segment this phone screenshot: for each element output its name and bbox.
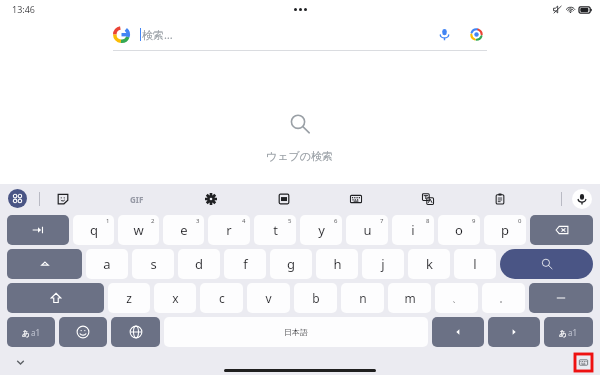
staticText: t: [273, 221, 278, 239]
button[interactable]: 。: [482, 283, 525, 313]
button[interactable]: e: [163, 215, 204, 245]
button[interactable]: Backspace: [530, 215, 593, 245]
button[interactable]: n: [341, 283, 384, 313]
staticText: 6: [334, 217, 338, 225]
button[interactable]: Clipboard: [489, 188, 511, 210]
button[interactable]: d: [178, 249, 220, 279]
button[interactable]: Translate: [417, 188, 439, 210]
staticText: r: [226, 221, 232, 239]
button[interactable]: w: [118, 215, 159, 245]
staticText: q: [90, 221, 98, 239]
button[interactable]: 、: [435, 283, 478, 313]
button[interactable]: j: [362, 249, 404, 279]
staticText: 9: [472, 217, 476, 225]
button[interactable]: r: [208, 215, 250, 245]
staticText: x: [172, 290, 179, 306]
button[interactable]: Shift: [7, 283, 104, 313]
staticText: 、: [452, 293, 461, 304]
button[interactable]: x: [154, 283, 196, 313]
staticText: l: [473, 255, 477, 273]
staticText: v: [265, 290, 272, 306]
staticText: u: [363, 221, 372, 239]
staticText: 1: [106, 217, 110, 225]
button[interactable]: p: [484, 215, 526, 245]
button[interactable]: v: [247, 283, 290, 313]
staticText: o: [455, 221, 463, 239]
staticText: 5: [288, 217, 292, 225]
button[interactable]: Keyboard modes: [345, 188, 367, 210]
staticText: GIF: [130, 194, 144, 205]
staticText: s: [150, 255, 157, 273]
staticText: y: [318, 221, 325, 239]
staticText: h: [333, 255, 342, 273]
staticText: a1: [568, 327, 578, 338]
button[interactable]: Emoji: [59, 317, 107, 347]
button[interactable]: Settings: [200, 188, 222, 210]
button[interactable]: Change language: [111, 317, 160, 347]
staticText: g: [287, 255, 295, 273]
button[interactable]: z: [108, 283, 150, 313]
staticText: 検索…: [142, 27, 173, 42]
button[interactable]: t: [254, 215, 296, 245]
staticText: k: [426, 255, 433, 273]
staticText: z: [126, 290, 132, 306]
staticText: 7: [380, 217, 384, 225]
staticText: d: [195, 255, 203, 273]
button[interactable]: [7, 215, 69, 245]
button[interactable]: Expand toolbar: [8, 189, 27, 208]
button[interactable]: k: [408, 249, 450, 279]
staticText: j: [381, 255, 385, 273]
button[interactable]: Google Lens: [465, 23, 487, 45]
staticText: あ: [22, 328, 31, 338]
staticText: p: [501, 221, 509, 239]
button[interactable]: Voice input: [572, 189, 592, 209]
button[interactable]: y: [300, 215, 342, 245]
button[interactable]: Dash: [529, 283, 593, 313]
staticText: a: [103, 255, 111, 273]
staticText: 2: [151, 217, 155, 225]
button[interactable]: b: [294, 283, 337, 313]
button[interactable]: Left: [432, 317, 484, 347]
staticText: 。: [499, 293, 508, 304]
staticText: 4: [242, 217, 246, 225]
button[interactable]: f: [224, 249, 266, 279]
button[interactable]: o: [438, 215, 480, 245]
button[interactable]: s: [132, 249, 174, 279]
staticText: 日本語: [284, 327, 308, 337]
button[interactable]: u: [346, 215, 388, 245]
button[interactable]: a: [86, 249, 128, 279]
staticText: あ: [559, 328, 568, 338]
button[interactable]: Hide keyboard: [12, 354, 28, 370]
staticText: m: [404, 290, 416, 306]
button[interactable]: q: [73, 215, 114, 245]
staticText: c: [219, 290, 225, 306]
staticText: i: [411, 221, 415, 239]
button[interactable]: m: [388, 283, 431, 313]
staticText: b: [312, 290, 320, 306]
button[interactable]: Caps lock: [7, 249, 82, 279]
staticText: f: [243, 255, 248, 273]
button[interactable]: Switch keyboard: [575, 354, 592, 371]
button[interactable]: GIF: [125, 188, 149, 210]
staticText: n: [359, 290, 367, 306]
staticText: 8: [426, 217, 430, 225]
button[interactable]: Right: [488, 317, 540, 347]
button[interactable]: あ: [544, 317, 593, 347]
staticText: a1: [31, 327, 41, 338]
button[interactable]: Voice search: [433, 23, 455, 45]
staticText: ウェブの検索: [266, 149, 334, 163]
button[interactable]: g: [270, 249, 312, 279]
button[interactable]: 日本語: [164, 317, 428, 347]
staticText: w: [133, 221, 144, 239]
button[interactable]: i: [392, 215, 434, 245]
button[interactable]: c: [200, 283, 243, 313]
button[interactable]: あ: [7, 317, 55, 347]
button[interactable]: Stickers: [52, 188, 74, 210]
button[interactable]: Themes: [273, 188, 295, 210]
button[interactable]: l: [454, 249, 496, 279]
button[interactable]: h: [316, 249, 358, 279]
staticText: 13:46: [12, 3, 36, 15]
staticText: e: [180, 221, 188, 239]
staticText: 3: [196, 217, 200, 225]
button[interactable]: Search: [500, 249, 593, 279]
